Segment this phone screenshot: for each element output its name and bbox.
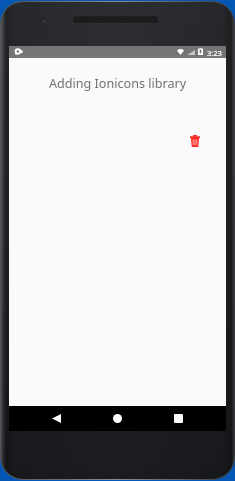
button[interactable]: Back [44, 406, 68, 431]
button[interactable]: Delete [190, 135, 200, 147]
staticText: 3:23 [207, 48, 222, 58]
staticText: Adding Ionicons library [49, 75, 187, 92]
button[interactable]: Recents [166, 406, 190, 431]
button[interactable]: Home [105, 406, 130, 431]
